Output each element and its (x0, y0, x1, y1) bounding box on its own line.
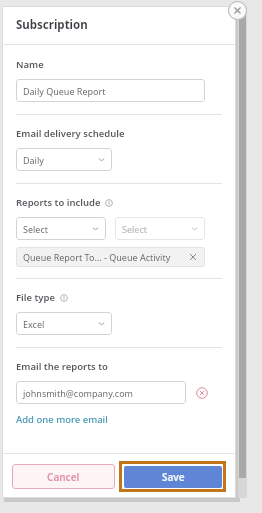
button[interactable]: Close (228, 1, 247, 20)
button[interactable]: Cancel (12, 464, 115, 489)
staticText: Add one more email (16, 413, 108, 426)
staticText: Excel (23, 318, 98, 330)
staticText: Daily Queue Report (23, 85, 198, 97)
button[interactable]: Add one more email (16, 413, 108, 426)
button[interactable]: johnsmith@company.com (16, 381, 186, 404)
staticText: Save (162, 470, 185, 484)
button[interactable]: Excel (16, 312, 112, 335)
staticText: Reports to include (16, 196, 101, 209)
button[interactable]: Queue Report To... - Queue Activity (16, 247, 205, 267)
staticText: Email delivery schedule (16, 127, 125, 140)
staticText: Queue Report To... - Queue Activity (23, 251, 188, 263)
staticText: Daily (23, 154, 98, 166)
button[interactable]: Select (16, 217, 106, 240)
staticText: johnsmith@company.com (23, 387, 179, 399)
staticText: Email the reports to (16, 360, 108, 373)
button[interactable]: Daily Queue Report (16, 79, 205, 102)
staticText: Select (23, 223, 92, 235)
button[interactable]: Remove email (195, 386, 209, 400)
staticText: Select (122, 223, 191, 235)
staticText: Subscription (16, 17, 88, 33)
staticText: File type (16, 291, 56, 304)
staticText: Cancel (47, 470, 80, 484)
button[interactable]: Save (124, 466, 222, 488)
button[interactable]: Daily (16, 148, 112, 171)
button[interactable]: Remove report (188, 252, 198, 262)
staticText: Name (16, 58, 44, 71)
button[interactable]: Select (115, 217, 205, 240)
